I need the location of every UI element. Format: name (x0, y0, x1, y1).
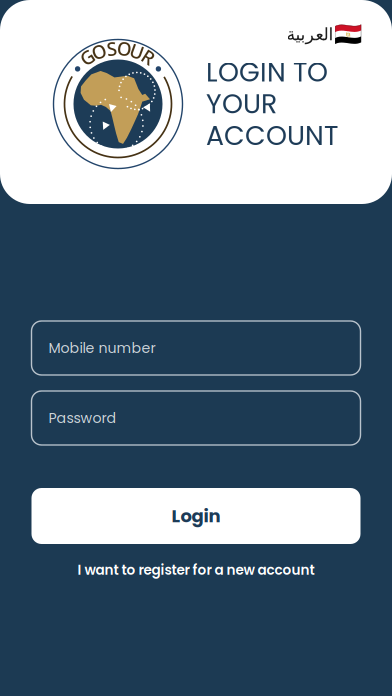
staticText: Login (171, 503, 220, 529)
staticText: U (111, 36, 125, 60)
button[interactable]: Login (31, 488, 360, 544)
staticText: O (110, 36, 125, 60)
staticText: ACCOUNT (206, 117, 338, 154)
staticText: العربية (286, 24, 333, 44)
staticText: R (112, 36, 124, 60)
staticText: 🇪🇬 (334, 21, 362, 48)
staticText: Password (48, 408, 116, 428)
staticText: YOUR (206, 85, 277, 123)
staticText: G (111, 36, 125, 60)
button[interactable]: I want to register for a new account (31, 557, 360, 583)
staticText: I want to register for a new account (77, 560, 314, 579)
staticText: LOGIN TO (206, 53, 328, 91)
staticText: Mobile number (48, 338, 155, 358)
button[interactable]: العربية (282, 18, 366, 51)
staticText: O (110, 36, 125, 60)
staticText: S (113, 36, 123, 60)
